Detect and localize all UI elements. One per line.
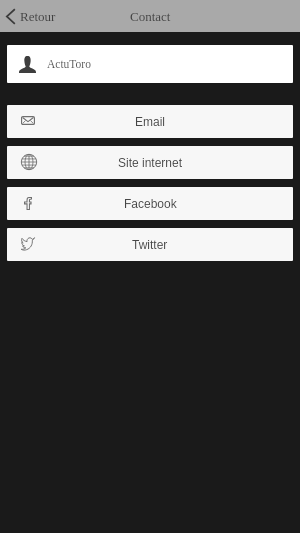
button[interactable]: Email bbox=[7, 105, 293, 138]
staticText: Twitter bbox=[132, 238, 168, 251]
staticText: Email bbox=[135, 115, 166, 128]
staticText: Contact bbox=[130, 9, 171, 23]
staticText: Facebook bbox=[124, 197, 177, 210]
staticText: Site internet bbox=[118, 156, 183, 169]
button[interactable]: Twitter bbox=[7, 228, 293, 261]
button[interactable]: Site internet bbox=[7, 146, 293, 179]
button[interactable]: Facebook bbox=[7, 187, 293, 220]
staticText: Retour bbox=[20, 9, 56, 23]
button[interactable]: Retour bbox=[0, 0, 66, 32]
staticText: ActuToro bbox=[47, 58, 91, 71]
button[interactable]: ActuToro bbox=[7, 45, 293, 83]
